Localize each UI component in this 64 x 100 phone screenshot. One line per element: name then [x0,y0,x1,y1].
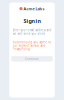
button[interactable]: Continue [11,56,53,62]
staticText: Enter your email address and we will sen… [12,28,51,35]
staticText: By continuing you agree to our Terms of … [12,40,51,51]
staticText: Continue [25,57,39,61]
staticText: Acme Labs [24,6,45,11]
staticText: Sign in [23,17,40,24]
